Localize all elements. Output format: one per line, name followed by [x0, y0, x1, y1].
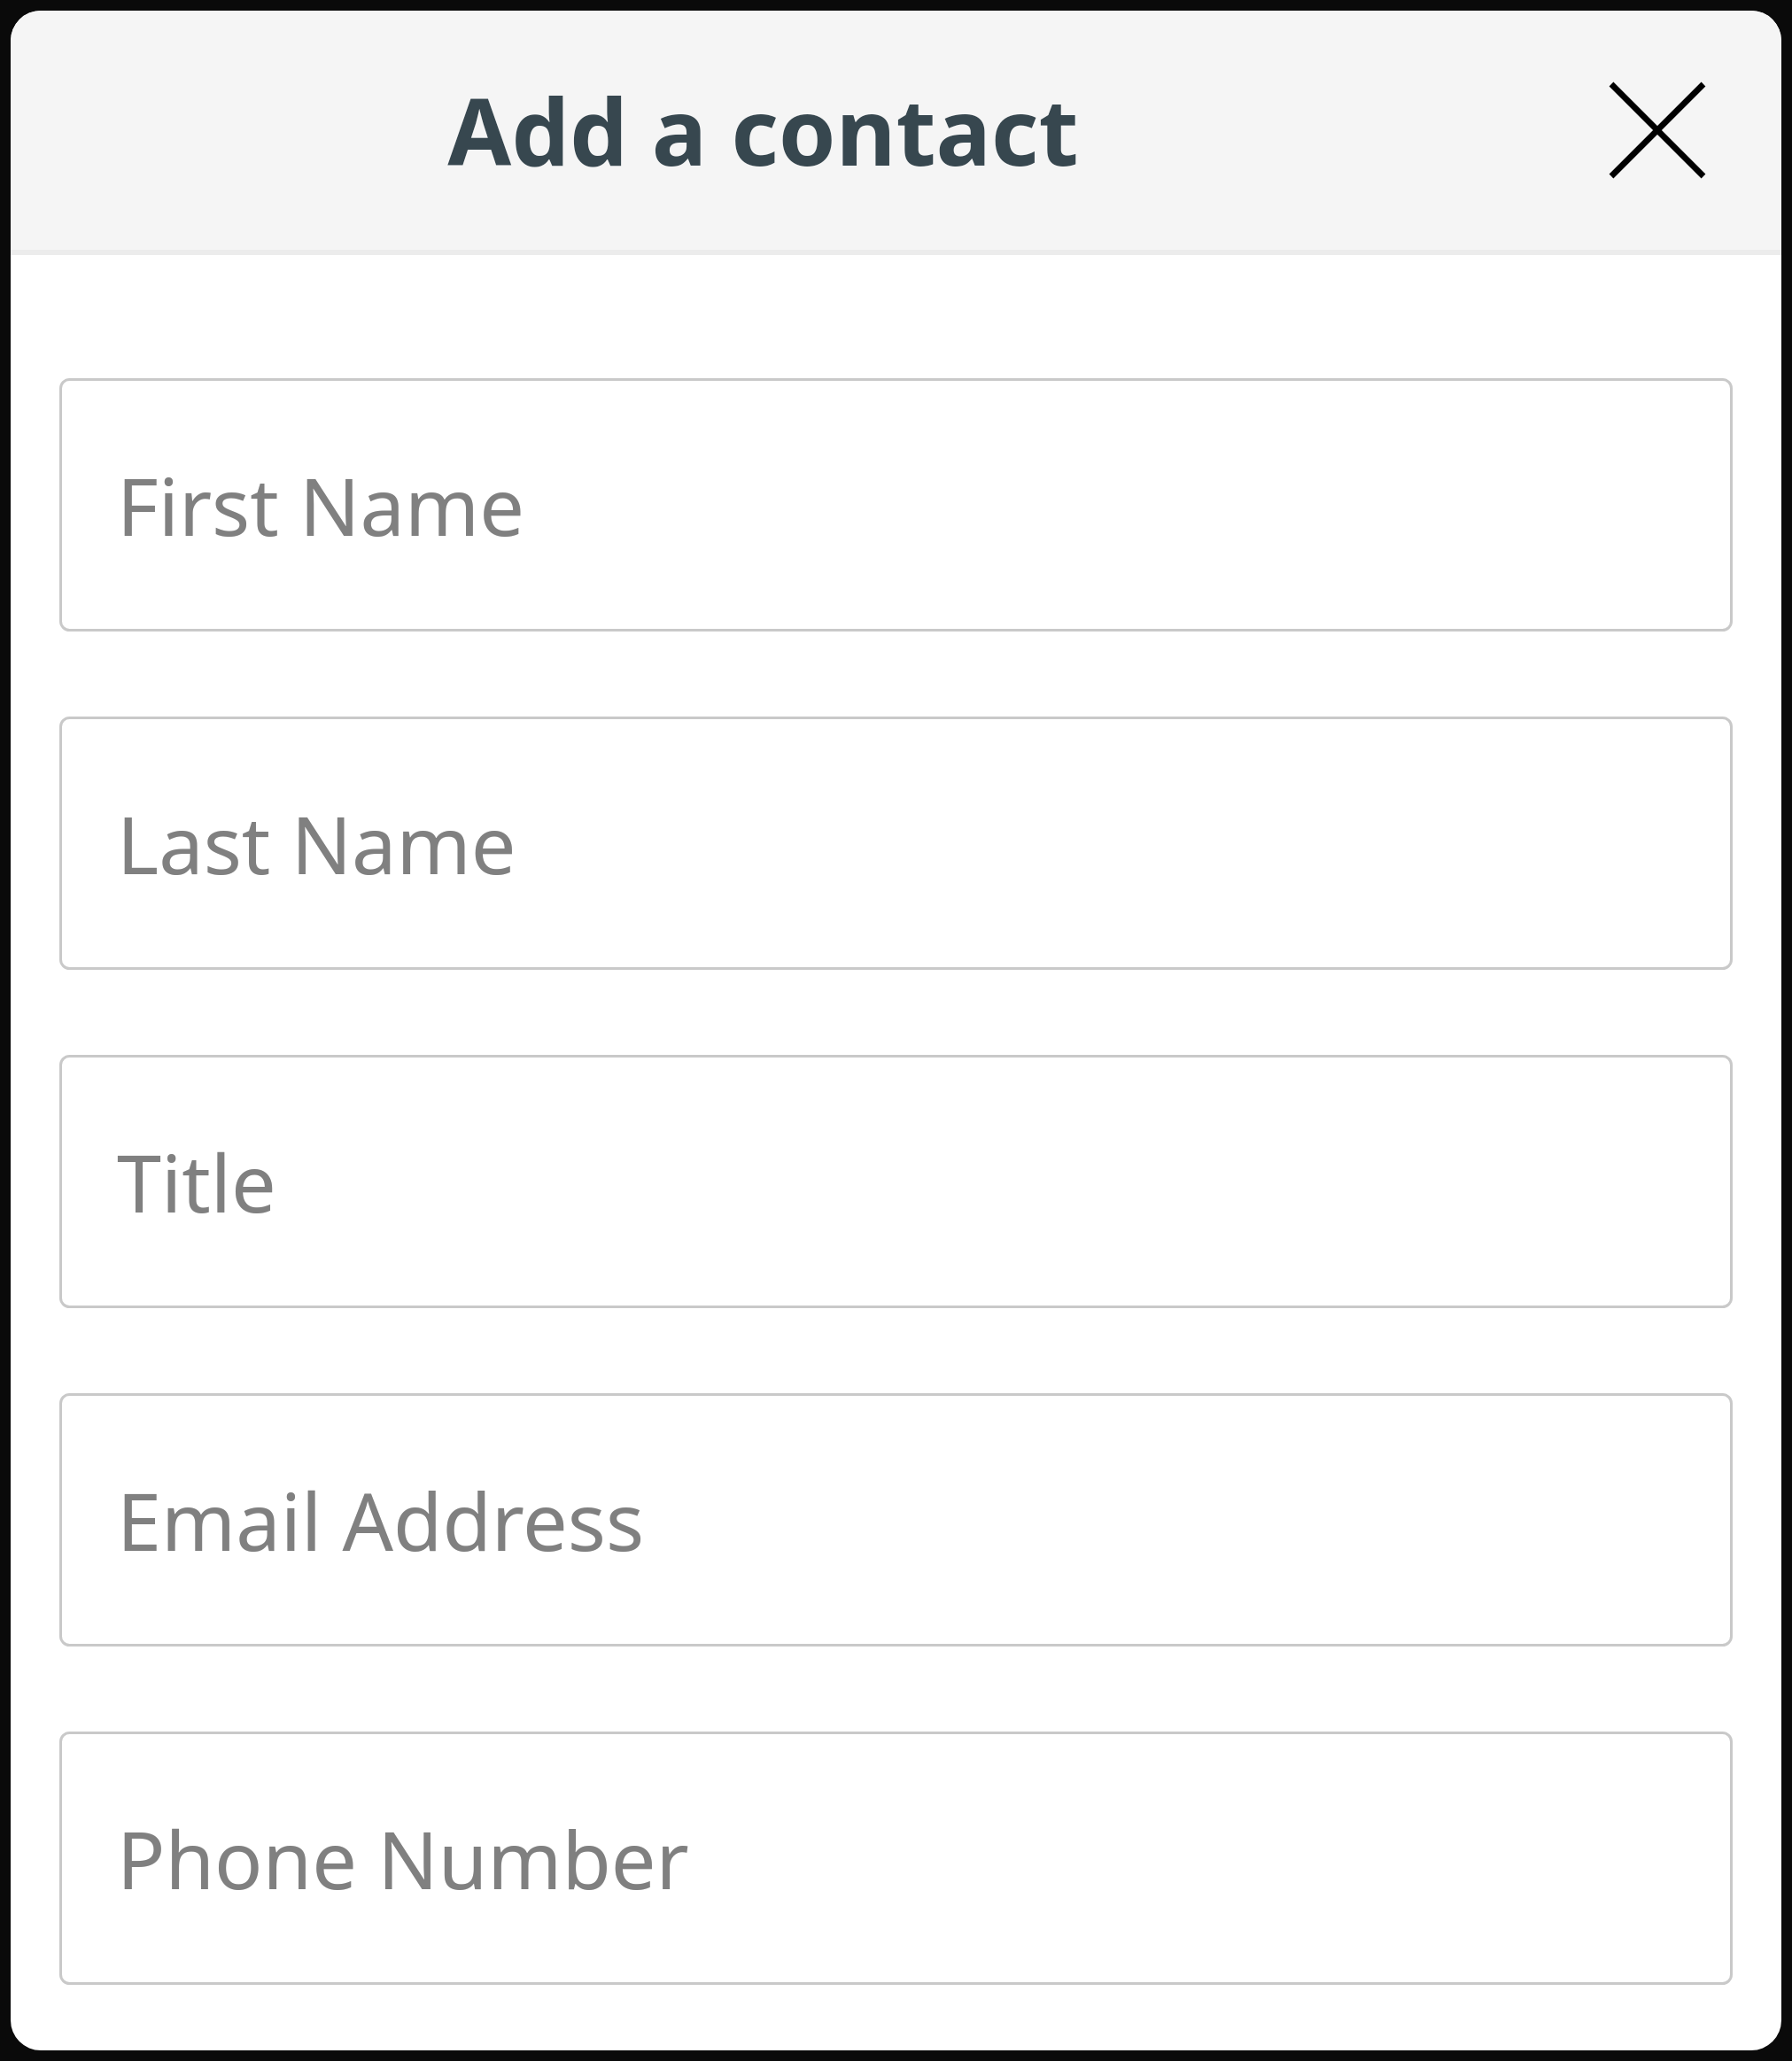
staticText: First Name [117, 451, 524, 560]
staticText: Last Name [117, 789, 516, 898]
staticText: Title [117, 1127, 276, 1236]
button[interactable]: Close [1604, 77, 1711, 183]
staticText: Add a contact [11, 67, 1516, 193]
staticText: Email Address [117, 1466, 645, 1575]
button[interactable]: Last Name [59, 717, 1733, 970]
staticText: Phone Number [117, 1804, 689, 1913]
button[interactable]: Title [59, 1055, 1733, 1308]
button[interactable]: Phone Number [59, 1732, 1733, 1985]
button[interactable]: First Name [59, 378, 1733, 631]
button[interactable]: Email Address [59, 1393, 1733, 1646]
